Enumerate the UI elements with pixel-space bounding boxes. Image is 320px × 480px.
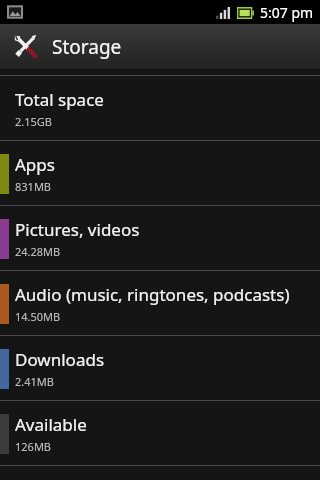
button[interactable]: Total space — [0, 76, 320, 140]
staticText: 126MB — [15, 439, 52, 454]
button[interactable]: Apps — [0, 141, 320, 205]
button[interactable]: Pictures, videos — [0, 206, 320, 270]
staticText: 14.50MB — [15, 309, 61, 324]
staticText: Audio (music, ringtones, podcasts) — [15, 283, 290, 306]
staticText: Storage — [52, 34, 122, 60]
staticText: 831MB — [15, 179, 52, 194]
staticText: 2.41MB — [15, 374, 54, 389]
other: Settings — [12, 33, 40, 61]
button[interactable]: Audio (music, ringtones, podcasts) — [0, 271, 320, 335]
staticText: 24.28MB — [15, 244, 61, 259]
staticText: Pictures, videos — [15, 218, 140, 241]
button[interactable]: Settings — [0, 24, 320, 70]
button[interactable]: Available — [0, 401, 320, 465]
staticText: Apps — [15, 153, 55, 176]
button[interactable]: Downloads — [0, 336, 320, 400]
staticText: 5:07 pm — [260, 3, 314, 22]
staticText: Available — [15, 413, 87, 436]
staticText: Total space — [15, 88, 104, 111]
staticText: Downloads — [15, 348, 105, 371]
staticText: 2.15GB — [15, 114, 52, 129]
